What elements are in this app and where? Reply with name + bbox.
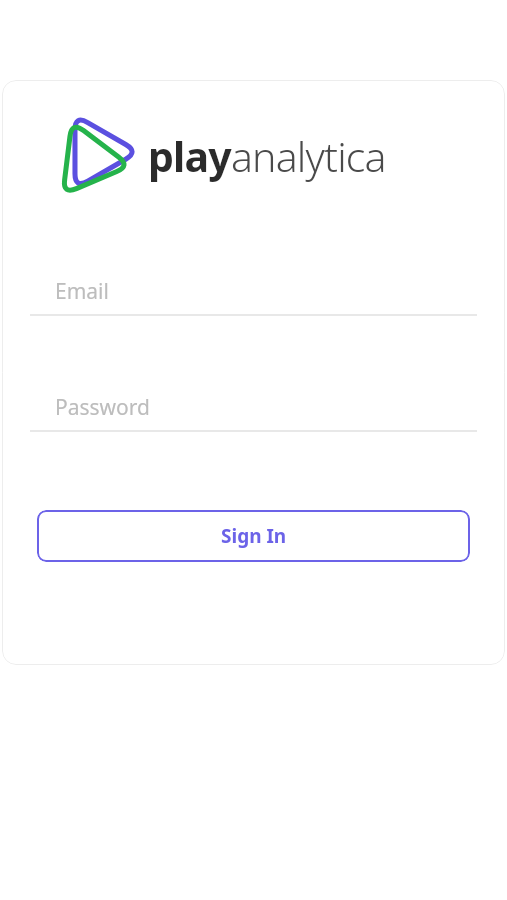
staticText: playanalytica [148, 128, 386, 184]
staticText: Sign In [221, 523, 287, 549]
staticText: Password [55, 393, 150, 422]
button[interactable]: Sign In [37, 510, 470, 562]
button[interactable]: Password [30, 384, 477, 432]
staticText: Email [55, 277, 109, 306]
button[interactable]: Email [30, 268, 477, 316]
